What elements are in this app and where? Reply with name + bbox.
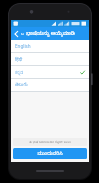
staticText: ಕನ್ನಡ xyxy=(15,70,80,75)
button[interactable]: ಕನ್ನಡ xyxy=(11,66,89,78)
button[interactable]: Back xyxy=(13,27,25,40)
staticText: English xyxy=(15,43,85,49)
staticText: ಭಾಷೆಯನ್ನು ಆಯ್ಕೆಮಾಡಿ xyxy=(26,30,85,38)
staticText: ಮುಂದುವರಿಸಿ xyxy=(37,151,63,157)
staticText: ಈ ಭಾಷೆ ಬದಲಾಯಿಸಲು ಸೆಟ್ಟಿಂಗ್ ಬಳಸಿರಿ xyxy=(29,140,71,144)
button[interactable]: English xyxy=(11,40,89,52)
button[interactable]: తెలుగు xyxy=(11,79,89,91)
button[interactable]: ಮುಂದುವರಿಸಿ xyxy=(13,148,87,159)
button[interactable]: हिंदी xyxy=(11,53,89,65)
staticText: ಬ xyxy=(21,32,24,36)
staticText: తెలుగు xyxy=(15,82,85,88)
staticText: हिंदी xyxy=(15,56,85,62)
